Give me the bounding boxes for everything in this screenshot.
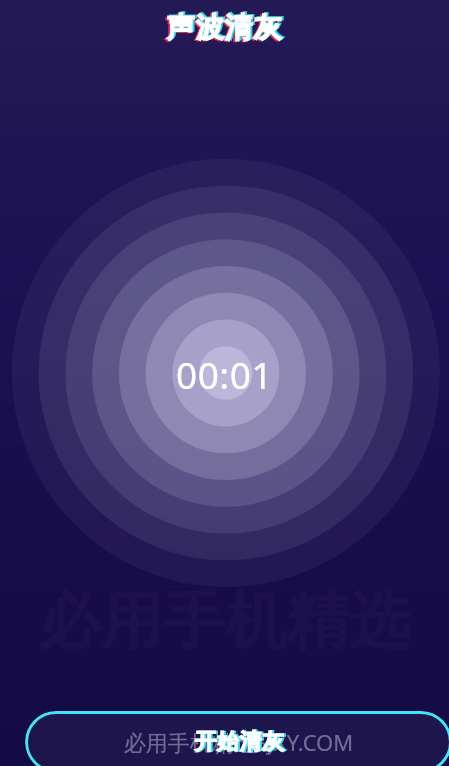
staticText: 开始清灰 [196,728,286,756]
staticText: 声波清灰 [0,11,447,46]
staticText: 00:01 [0,349,449,399]
staticText: 必用手机精选SJXY.COM [25,727,449,757]
other: Sound wave cleaning visualizer [0,159,449,587]
staticText: 开始清灰 [194,728,284,756]
staticText: 声波清灰 [2,9,449,44]
button[interactable]: 必用手机精选SJXY.COM [25,711,449,766]
staticText: 声波清灰 [0,10,449,45]
